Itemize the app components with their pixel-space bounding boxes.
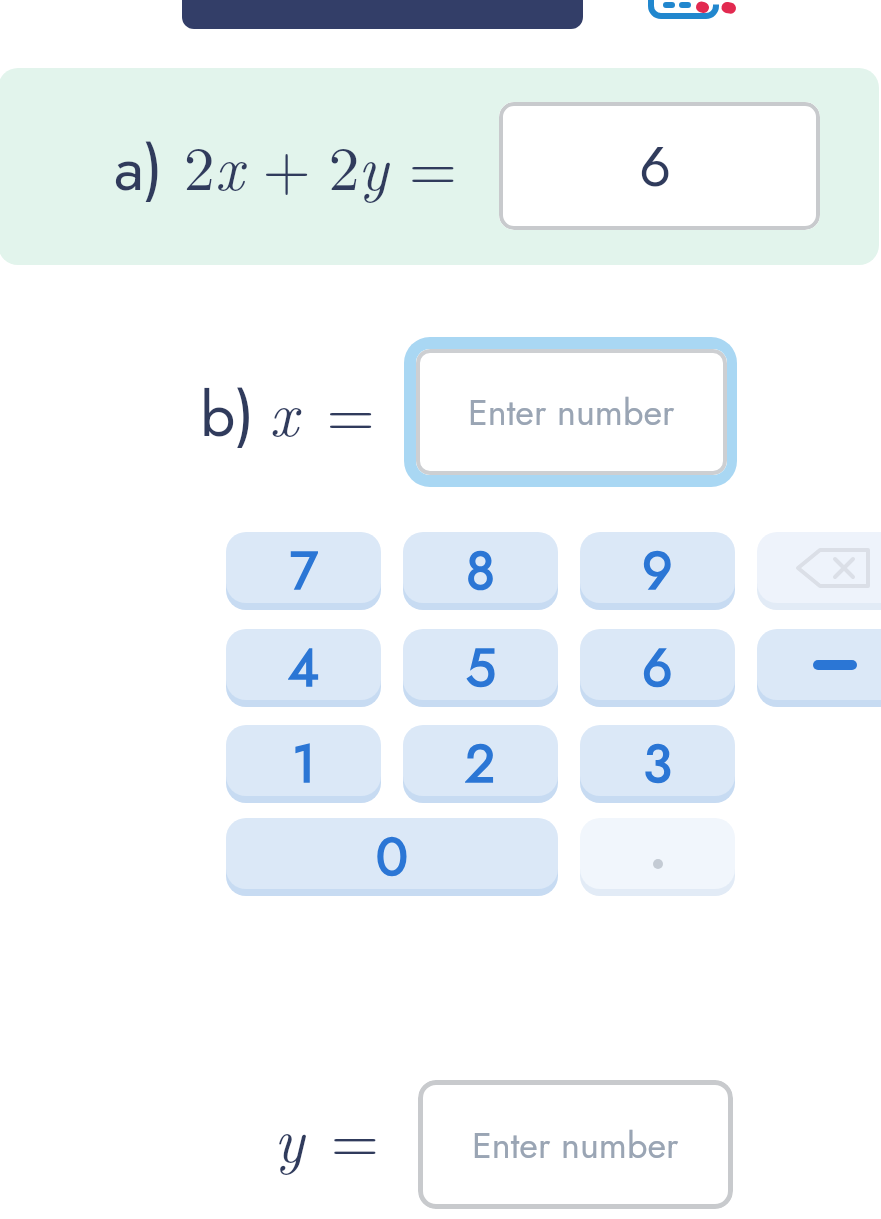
button[interactable]: 6 (499, 102, 820, 230)
staticText: 9 (642, 532, 673, 603)
button[interactable]: 7 (226, 532, 381, 603)
staticText: 1 (292, 725, 316, 796)
button[interactable]: 0 (226, 818, 558, 889)
button[interactable] (757, 629, 881, 700)
staticText: 2 (465, 725, 496, 796)
staticText: 8 (466, 532, 495, 603)
button[interactable]: 8 (403, 532, 558, 603)
staticText: y = (274, 1092, 380, 1180)
button[interactable] (580, 818, 735, 889)
staticText: b) x = (200, 366, 375, 459)
staticText: Enter number (468, 386, 675, 438)
button[interactable]: 6 (580, 629, 735, 700)
button[interactable]: 2 (403, 725, 558, 796)
staticText: 3 (643, 725, 672, 796)
staticText: a) 2x + 2y = (114, 120, 457, 213)
staticText: 7 (290, 532, 318, 603)
staticText: 0 (376, 818, 408, 889)
button[interactable]: 3 (580, 725, 735, 796)
button[interactable]: 4 (226, 629, 381, 700)
staticText: 6 (639, 126, 672, 207)
button[interactable]: 9 (580, 532, 735, 603)
staticText: 4 (288, 629, 319, 700)
staticText: 6 (642, 629, 673, 700)
button[interactable]: Enter number (416, 349, 727, 475)
button[interactable]: 1 (226, 725, 381, 796)
button[interactable] (757, 532, 881, 603)
staticText: Enter number (472, 1119, 679, 1171)
button[interactable]: 5 (403, 629, 558, 700)
button[interactable]: Enter number (418, 1080, 733, 1209)
button[interactable] (640, 0, 750, 30)
staticText: 5 (466, 629, 496, 700)
